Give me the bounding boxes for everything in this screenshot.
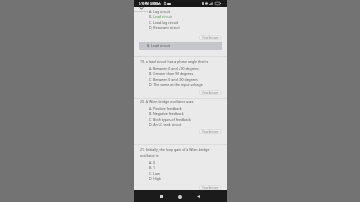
button[interactable]: D. High: [149, 176, 162, 181]
button[interactable]: View Answer: [199, 35, 221, 40]
button[interactable]: 20. A Wien-bridge oscillator uses: [140, 99, 194, 104]
button[interactable]: View Answer: [199, 129, 221, 134]
button[interactable]: A. Positive feedback: [149, 106, 182, 111]
staticText: B. Lead circuit: [147, 43, 170, 48]
staticText: View Answer: [202, 91, 219, 95]
button[interactable]: Home: [175, 192, 184, 201]
staticText: A. 0: [149, 160, 156, 165]
staticText: 21. Initially, the loop gain of a Wien-b…: [140, 147, 210, 152]
staticText: D. High: [149, 176, 162, 181]
staticText: A. Positive feedback: [149, 106, 182, 111]
button[interactable]: C. Between 0 and -90 degrees: [149, 77, 198, 82]
button[interactable]: A. Between 0 and +90 degrees: [149, 66, 199, 71]
staticText: View Answer: [202, 186, 219, 190]
button[interactable]: oscillator is: [140, 153, 159, 158]
staticText: 19. a lead circuit has a phase angle tha…: [140, 59, 209, 64]
button[interactable]: View Answer: [199, 185, 221, 190]
staticText: oscillator is: [140, 153, 159, 158]
button[interactable]: 21. Initially, the loop gain of a Wien-b…: [140, 147, 210, 152]
button[interactable]: 19. a lead circuit has a phase angle tha…: [140, 59, 209, 64]
button[interactable]: B. Negative feedback: [149, 111, 184, 116]
button[interactable]: A. Lag circuit: [149, 9, 170, 14]
staticText: B. 1: [149, 165, 156, 170]
button[interactable]: B. 1: [149, 165, 156, 170]
button[interactable]: D. The same as the input voltage: [149, 82, 203, 87]
staticText: C. Low: [149, 171, 160, 176]
button[interactable]: A. 0: [149, 160, 156, 165]
staticText: View Answer: [202, 36, 219, 40]
button[interactable]: B. Greater than 90 degrees: [149, 71, 194, 76]
staticText: D. Resonant circuit: [149, 25, 180, 30]
button[interactable]: C. Low: [149, 171, 160, 176]
button[interactable]: Back: [194, 192, 203, 201]
staticText: C. Between 0 and -90 degrees: [149, 77, 198, 82]
staticText: C. Both types of feedback: [149, 117, 191, 122]
staticText: B. Negative feedback: [149, 111, 184, 116]
button[interactable]: B. Lead circuit: [149, 14, 172, 19]
staticText: 20. A Wien-bridge oscillator uses: [140, 99, 194, 104]
staticText: A. Lag circuit: [149, 9, 170, 14]
button[interactable]: D. An LC tank circuit: [149, 122, 182, 127]
staticText: B. Greater than 90 degrees: [149, 71, 194, 76]
button[interactable]: C. Lead-lag circuit: [149, 20, 179, 25]
staticText: 1:10 PM 0.00Kb/s: [139, 2, 161, 6]
button[interactable]: B. Lead circuit: [147, 43, 170, 48]
button[interactable]: C. Both types of feedback: [149, 117, 191, 122]
staticText: D. The same as the input voltage: [149, 82, 203, 87]
staticText: B. Lead circuit: [149, 14, 172, 19]
staticText: A. Between 0 and +90 degrees: [149, 66, 199, 71]
button[interactable]: Recents: [157, 192, 166, 201]
staticText: D. An LC tank circuit: [149, 122, 182, 127]
button[interactable]: View Answer: [199, 90, 221, 95]
staticText: View Answer: [202, 130, 219, 134]
button[interactable]: D. Resonant circuit: [149, 25, 180, 30]
staticText: C. Lead-lag circuit: [149, 20, 179, 25]
button[interactable]: [139, 42, 222, 50]
